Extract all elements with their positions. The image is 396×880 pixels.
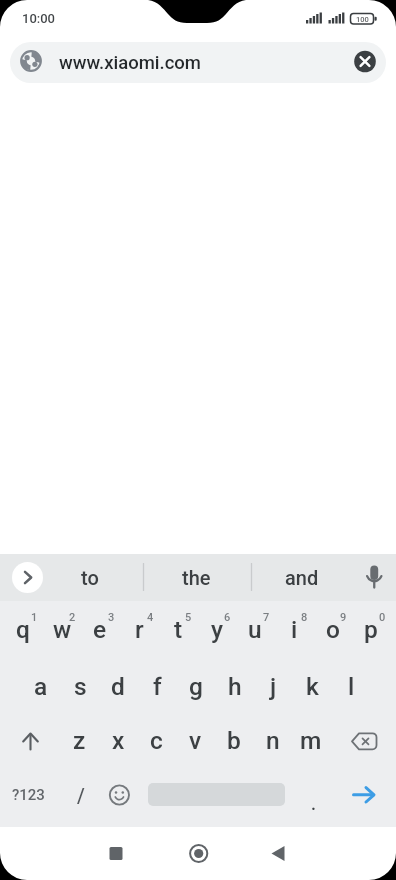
button[interactable] [12,562,43,593]
staticText: 10:00 [22,11,55,26]
button[interactable]: www.xiaomi.com [10,42,386,83]
staticText: 4 [147,611,154,624]
button[interactable]: c [137,713,175,767]
staticText: v [189,726,202,755]
button[interactable]: u [236,602,274,656]
button[interactable]: w [43,602,81,656]
staticText: s [74,672,87,701]
staticText: f [153,672,162,701]
button[interactable]: . [295,776,333,830]
button[interactable]: t [159,602,197,656]
staticText: l [348,672,355,701]
button[interactable]: k [293,659,331,713]
button[interactable] [172,830,224,876]
button[interactable]: to [60,557,120,597]
button[interactable]: p [352,602,390,656]
staticText: h [228,672,242,701]
staticText: u [248,615,262,644]
button[interactable]: h [216,659,254,713]
button[interactable]: b [215,713,253,767]
button[interactable]: j [254,659,292,713]
staticText: e [93,615,107,644]
button[interactable]: e [81,602,119,656]
staticText: n [266,726,280,755]
button[interactable]: o [314,602,352,656]
staticText: y [211,615,223,644]
button[interactable]: s [61,659,99,713]
staticText: / [77,784,85,807]
button[interactable] [343,713,388,767]
staticText: 8 [301,611,308,624]
button[interactable]: v [176,713,214,767]
staticText: x [112,726,125,755]
staticText: 0 [379,611,386,624]
button[interactable] [92,830,144,876]
staticText: q [16,615,30,644]
staticText: ?123 [12,786,45,804]
staticText: www.xiaomi.com [59,52,201,74]
button[interactable]: and [272,557,332,597]
button[interactable]: i [275,602,313,656]
staticText: t [174,615,183,644]
staticText: r [135,615,144,644]
staticText: 100 [356,15,369,24]
button[interactable]: f [138,659,176,713]
button[interactable]: a [22,659,60,713]
staticText: 2 [69,611,76,624]
staticText: j [270,672,277,701]
staticText: to [81,566,99,589]
staticText: the [182,566,211,589]
button[interactable]: n [254,713,292,767]
staticText: 1 [31,611,38,624]
staticText: o [326,615,340,644]
button[interactable]: y [198,602,236,656]
button[interactable]: d [99,659,137,713]
staticText: . [311,793,317,814]
staticText: m [300,726,322,755]
button[interactable]: l [332,659,370,713]
button[interactable]: the [166,557,226,597]
staticText: g [189,672,203,701]
button[interactable] [343,768,388,822]
button[interactable] [8,713,53,767]
button[interactable]: r [120,602,158,656]
button[interactable]: g [177,659,215,713]
button[interactable]: z [60,713,98,767]
staticText: a [34,672,48,701]
staticText: k [306,672,319,701]
button[interactable]: m [292,713,330,767]
staticText: p [364,615,378,644]
staticText: 5 [185,611,192,624]
button[interactable]: q [4,602,42,656]
button[interactable] [100,768,138,822]
staticText: c [150,726,163,755]
staticText: z [73,726,86,755]
staticText: 6 [224,611,231,624]
button[interactable]: / [62,768,100,822]
staticText: w [53,615,72,644]
button[interactable]: x [99,713,137,767]
staticText: 7 [263,611,270,624]
staticText: d [111,672,125,701]
staticText: b [227,726,241,755]
button[interactable] [252,830,304,876]
staticText: and [285,566,319,589]
staticText: i [291,615,298,644]
staticText: 3 [108,611,115,624]
button[interactable]: ?123 [6,768,50,822]
staticText: 9 [340,611,347,624]
